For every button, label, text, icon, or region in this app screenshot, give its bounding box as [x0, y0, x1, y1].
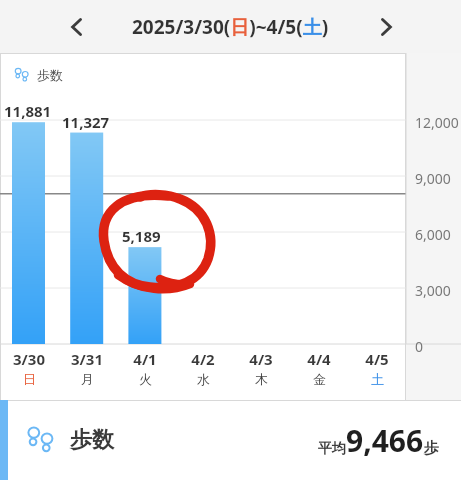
staticText: 水: [197, 371, 210, 387]
staticText: 3/31: [71, 349, 103, 369]
button[interactable]: 歩数: [0, 400, 461, 480]
staticText: 木: [255, 371, 268, 387]
staticText: 平均: [318, 440, 346, 458]
button[interactable]: Next week: [364, 5, 408, 49]
staticText: 歩数: [70, 426, 114, 454]
staticText: 歩数: [37, 67, 63, 83]
staticText: 歩: [424, 439, 439, 458]
staticText: 日: [23, 371, 36, 387]
staticText: 月: [81, 371, 94, 387]
staticText: 11,327: [62, 112, 110, 132]
staticText: 土: [371, 371, 384, 387]
staticText: 3,000: [415, 281, 451, 300]
staticText: 6,000: [415, 225, 451, 244]
staticText: 4/2: [191, 349, 215, 369]
staticText: 12,000: [415, 113, 459, 132]
staticText: 9,000: [415, 169, 451, 188]
staticText: 金: [313, 371, 326, 387]
staticText: 4/3: [249, 349, 273, 369]
staticText: 4/1: [133, 349, 157, 369]
staticText: 11,881: [4, 101, 52, 121]
button[interactable]: Previous week: [55, 5, 99, 49]
staticText: 火: [139, 371, 152, 387]
staticText: 5,189: [122, 226, 161, 246]
staticText: 2025/3/30(日)~4/5(土): [132, 14, 329, 40]
staticText: 9,466: [346, 420, 424, 461]
staticText: 0: [415, 337, 424, 356]
staticText: 4/5: [365, 349, 389, 369]
staticText: 4/4: [307, 349, 331, 369]
staticText: 3/30: [13, 349, 45, 369]
